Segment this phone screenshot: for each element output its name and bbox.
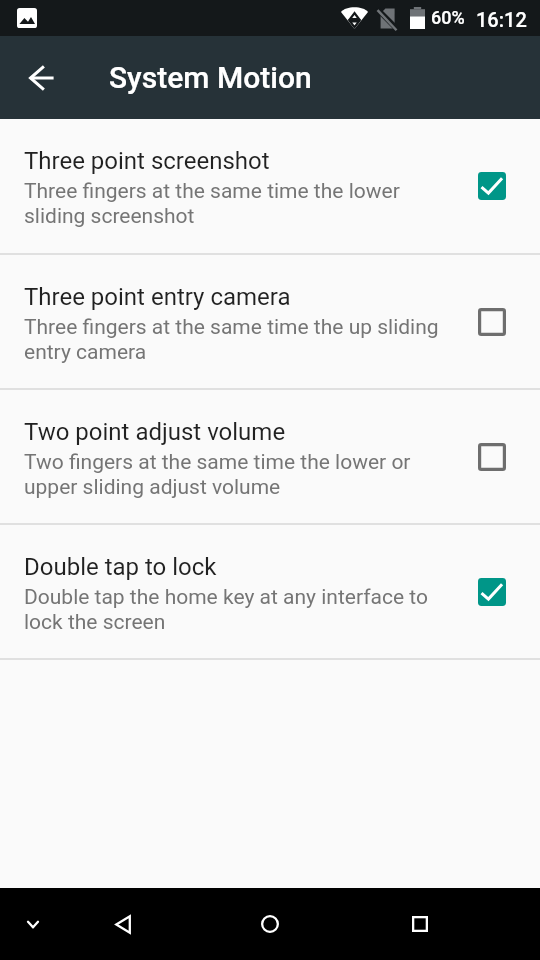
button[interactable]: Two point adjust volume (0, 390, 540, 525)
button[interactable]: Back (96, 897, 150, 951)
staticText: 60% (431, 7, 465, 28)
button[interactable]: Three point screenshot (0, 119, 540, 255)
staticText: Two point adjust volume (24, 418, 286, 446)
staticText: System Motion (109, 60, 312, 95)
button[interactable]: Three point entry camera (0, 255, 540, 390)
staticText: 16:12 (476, 8, 527, 31)
staticText: Three point screenshot (24, 147, 270, 175)
staticText: Three fingers at the same time the up sl… (24, 315, 450, 365)
button[interactable]: Disabled (478, 308, 506, 336)
staticText: Three fingers at the same time the lower… (24, 179, 450, 229)
button[interactable]: Enabled (478, 172, 506, 200)
button[interactable]: Recent apps (393, 897, 447, 951)
button[interactable]: Disabled (478, 443, 506, 471)
staticText: Two fingers at the same time the lower o… (24, 450, 450, 500)
button[interactable]: Hide keyboard (6, 897, 60, 951)
staticText: Double tap the home key at any interface… (24, 585, 450, 635)
button[interactable]: Double tap to lock (0, 525, 540, 660)
button[interactable]: Navigate up (12, 48, 71, 107)
button[interactable]: Enabled (478, 578, 506, 606)
button[interactable]: Home (243, 897, 297, 951)
staticText: Double tap to lock (24, 553, 217, 581)
staticText: Three point entry camera (24, 283, 291, 311)
